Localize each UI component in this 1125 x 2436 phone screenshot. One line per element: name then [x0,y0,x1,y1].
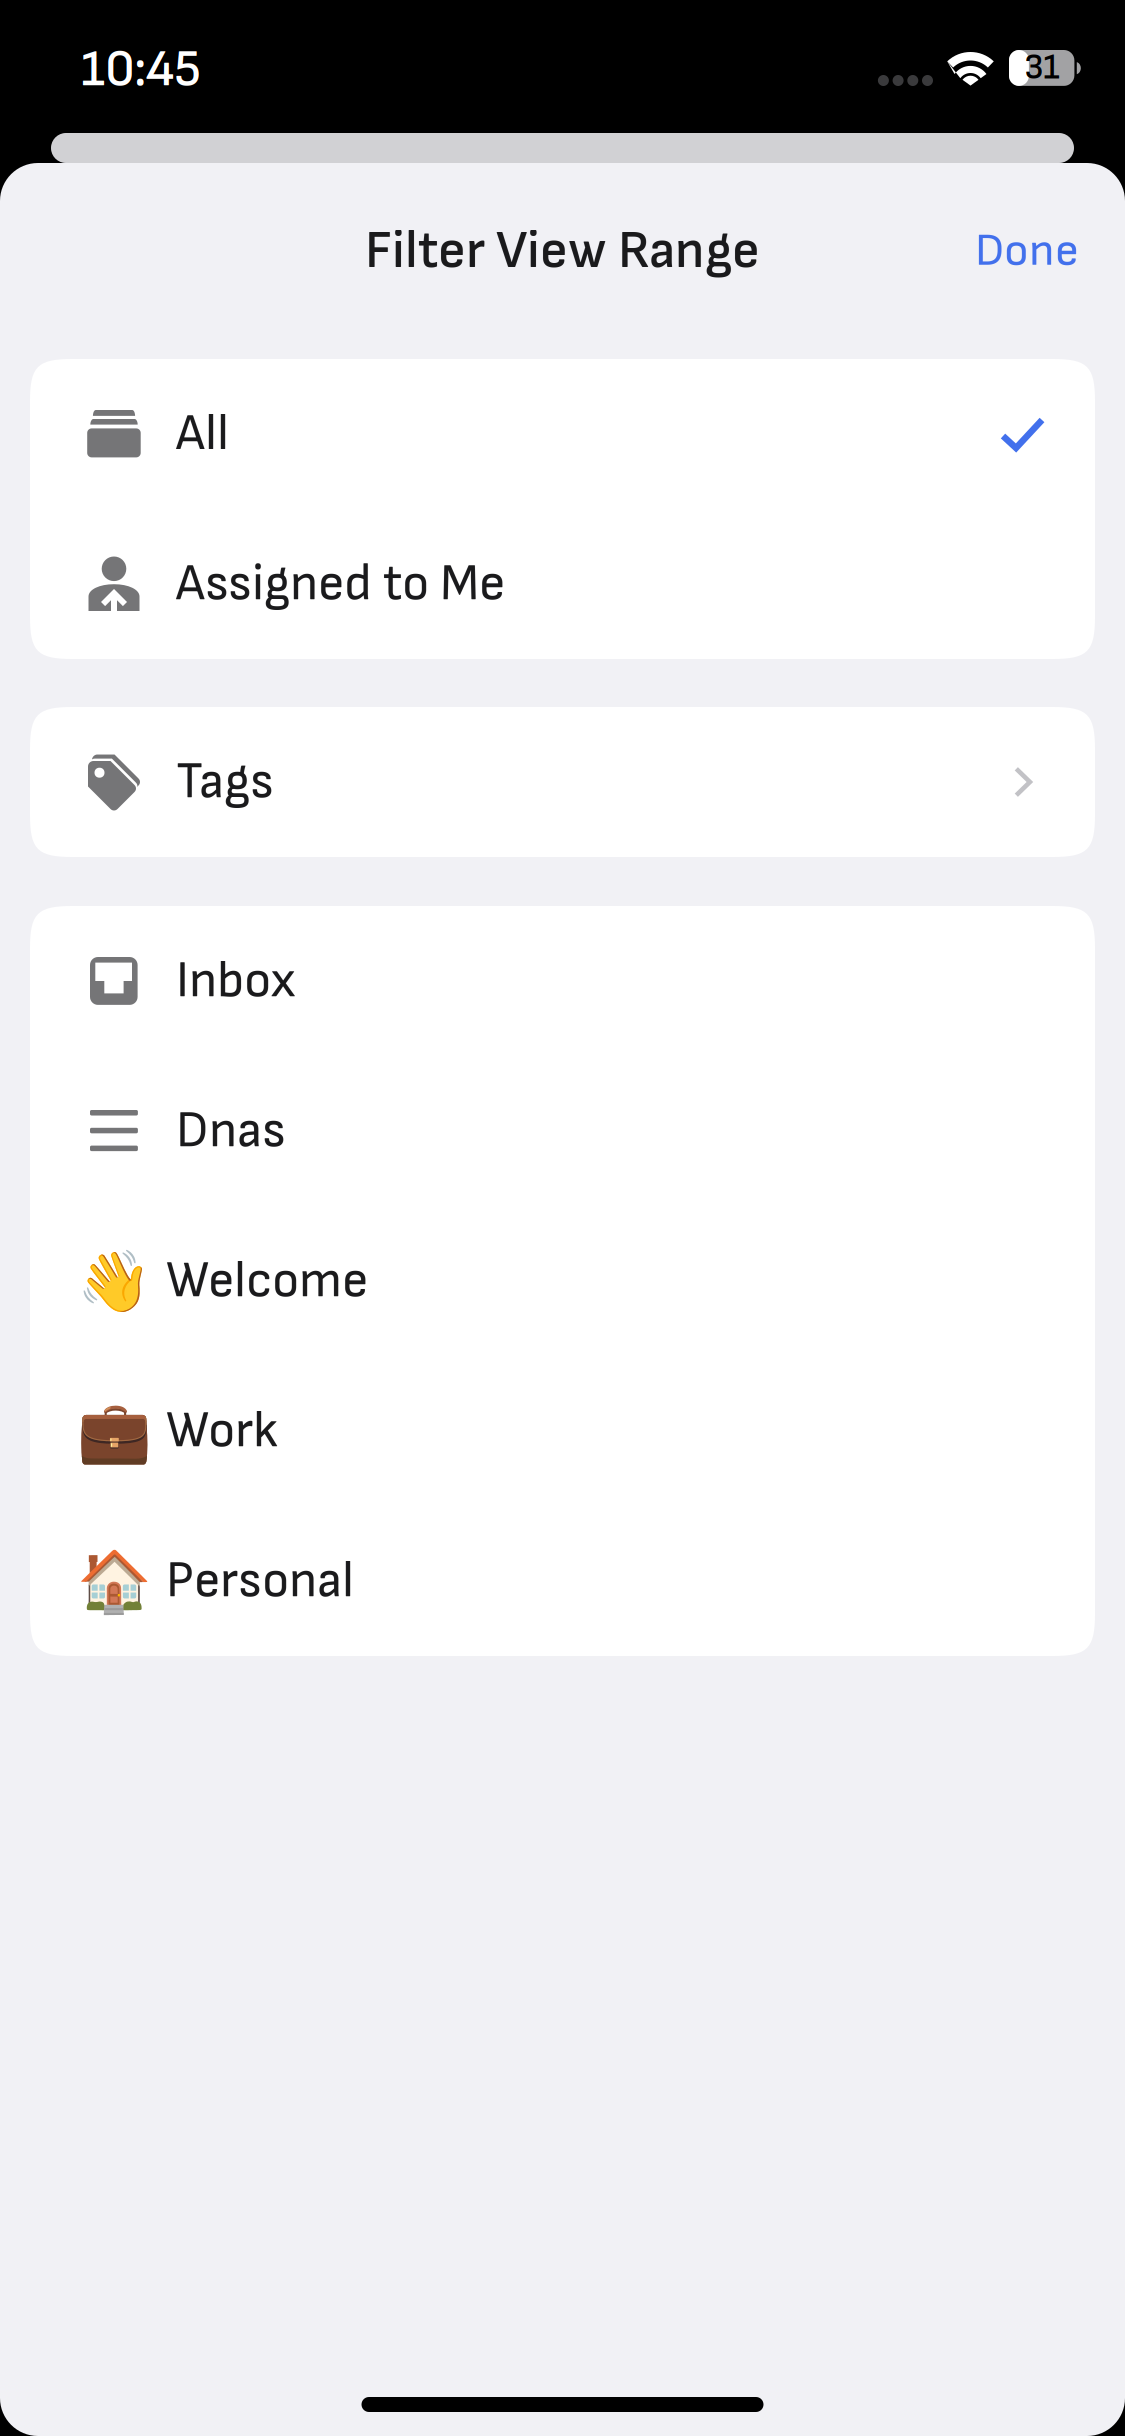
button[interactable]: Done [961,203,1093,299]
staticText: 31 [1024,47,1059,89]
staticText: Inbox [176,950,295,1012]
staticText: Tags [176,751,274,813]
staticText: Filter View Range [365,219,760,283]
button[interactable]: Dnas [30,1056,1095,1206]
staticText: 10:45 [81,39,201,101]
staticText: All [176,403,229,465]
staticText: Personal [166,1550,354,1612]
staticText: 💼 [77,1396,152,1466]
button[interactable]: 🏠 [30,1506,1095,1656]
button[interactable]: Assigned to Me [30,509,1095,659]
button[interactable]: All [30,359,1095,509]
button[interactable]: Tags [30,707,1095,857]
staticText: Welcome [166,1250,368,1312]
staticText: Work [166,1400,278,1462]
button[interactable]: 💼 [30,1356,1095,1506]
button[interactable]: 👋 [30,1206,1095,1356]
staticText: 👋 [77,1246,152,1316]
staticText: 🏠 [77,1546,152,1616]
button[interactable]: Inbox [30,906,1095,1056]
staticText: Done [975,223,1079,279]
staticText: Dnas [176,1100,286,1162]
staticText: Assigned to Me [176,553,505,615]
